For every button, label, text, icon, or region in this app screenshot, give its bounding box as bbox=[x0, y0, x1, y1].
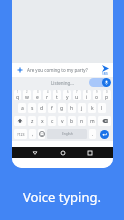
button[interactable]: 5 bbox=[53, 90, 61, 100]
button[interactable]: Emoji bbox=[38, 129, 45, 139]
button[interactable]: Backspace bbox=[98, 116, 111, 126]
button[interactable]: c bbox=[48, 116, 56, 126]
button[interactable]: z bbox=[28, 116, 36, 126]
staticText: x bbox=[41, 118, 44, 125]
staticText: j bbox=[81, 105, 83, 112]
button[interactable]: Voice input bbox=[89, 78, 111, 87]
button[interactable]: a bbox=[18, 103, 26, 113]
staticText: 7 bbox=[76, 90, 78, 94]
button[interactable]: f bbox=[48, 103, 56, 113]
button[interactable]: Recent apps bbox=[85, 148, 95, 158]
staticText: h bbox=[70, 105, 74, 112]
button[interactable]: Enter bbox=[98, 129, 111, 139]
button[interactable]: ?123 bbox=[14, 129, 27, 139]
button[interactable]: 0 bbox=[103, 90, 111, 100]
staticText: Are you coming to my party? bbox=[27, 67, 88, 73]
button[interactable]: Add attachment bbox=[15, 65, 25, 75]
staticText: ?123 bbox=[17, 132, 25, 137]
button[interactable]: . bbox=[89, 129, 96, 139]
staticText: p bbox=[105, 94, 109, 100]
staticText: 3 bbox=[37, 90, 39, 94]
staticText: y bbox=[66, 94, 69, 100]
staticText: k bbox=[91, 105, 94, 112]
button[interactable]: 8 bbox=[83, 90, 91, 100]
staticText: l bbox=[101, 105, 103, 112]
staticText: 1 bbox=[17, 90, 19, 94]
staticText: q bbox=[16, 94, 20, 100]
staticText: n bbox=[80, 118, 84, 125]
staticText: Voice typing. bbox=[23, 188, 101, 206]
staticText: 9 bbox=[96, 90, 98, 94]
staticText: v bbox=[61, 118, 64, 125]
staticText: 0 bbox=[106, 90, 108, 94]
button[interactable]: d bbox=[38, 103, 46, 113]
staticText: u bbox=[75, 94, 79, 100]
button[interactable]: 1 bbox=[14, 90, 21, 100]
button[interactable]: , bbox=[29, 129, 36, 139]
button[interactable]: English bbox=[47, 129, 87, 139]
button[interactable]: Home bbox=[58, 148, 68, 158]
staticText: g bbox=[60, 105, 64, 112]
staticText: c bbox=[51, 118, 54, 125]
staticText: r bbox=[46, 94, 49, 100]
staticText: w bbox=[25, 94, 29, 100]
staticText: d bbox=[40, 105, 44, 112]
staticText: English bbox=[62, 132, 73, 136]
button[interactable]: 3 bbox=[33, 90, 41, 100]
staticText: z bbox=[31, 118, 34, 125]
button[interactable]: n bbox=[78, 116, 86, 126]
button[interactable]: k bbox=[88, 103, 96, 113]
staticText: 6 bbox=[67, 90, 69, 94]
button[interactable]: v bbox=[58, 116, 66, 126]
staticText: m bbox=[90, 118, 95, 125]
staticText: s bbox=[31, 105, 34, 112]
button[interactable]: b bbox=[68, 116, 76, 126]
staticText: 2 bbox=[26, 90, 28, 94]
staticText: i bbox=[86, 94, 88, 100]
button[interactable]: h bbox=[68, 103, 76, 113]
button[interactable]: 2 bbox=[23, 90, 31, 100]
staticText: 5 bbox=[56, 90, 58, 94]
staticText: o bbox=[95, 94, 99, 100]
button[interactable]: j bbox=[78, 103, 86, 113]
button[interactable]: Shift bbox=[14, 116, 26, 126]
staticText: b bbox=[70, 118, 74, 125]
staticText: a bbox=[21, 105, 24, 112]
button[interactable]: Back bbox=[30, 148, 40, 158]
staticText: 4 bbox=[47, 90, 49, 94]
staticText: SMS bbox=[102, 72, 109, 76]
staticText: f bbox=[51, 105, 53, 112]
button[interactable]: 7 bbox=[73, 90, 81, 100]
staticText: Listening… bbox=[51, 80, 74, 86]
staticText: , bbox=[32, 131, 34, 138]
button[interactable]: s bbox=[28, 103, 36, 113]
button[interactable]: 6 bbox=[63, 90, 71, 100]
button[interactable]: Send SMS bbox=[101, 64, 110, 77]
button[interactable]: l bbox=[98, 103, 106, 113]
staticText: t bbox=[56, 94, 58, 100]
staticText: 8 bbox=[86, 90, 88, 94]
staticText: . bbox=[92, 131, 94, 138]
button[interactable]: m bbox=[88, 116, 96, 126]
button[interactable]: x bbox=[38, 116, 46, 126]
button[interactable]: 4 bbox=[43, 90, 51, 100]
staticText: e bbox=[36, 94, 39, 100]
button[interactable]: 9 bbox=[93, 90, 101, 100]
button[interactable]: g bbox=[58, 103, 66, 113]
